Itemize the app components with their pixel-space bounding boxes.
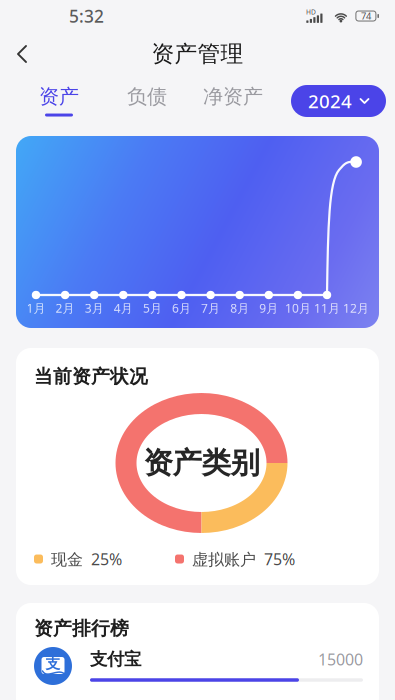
- staticText: 15000: [318, 649, 363, 670]
- button[interactable]: Back: [0, 32, 50, 76]
- staticText: 支: [45, 654, 60, 672]
- staticText: 6月: [172, 300, 191, 316]
- staticText: 资产排行榜: [34, 617, 129, 640]
- staticText: 2024: [308, 89, 352, 113]
- staticText: 5月: [143, 300, 162, 316]
- staticText: HD: [306, 8, 316, 16]
- staticText: 1月: [26, 300, 45, 316]
- button[interactable]: 负债: [123, 85, 171, 116]
- staticText: 12月: [343, 300, 369, 316]
- staticText: 资产管理: [151, 40, 243, 68]
- staticText: 资产: [39, 84, 79, 109]
- staticText: 当前资产状况: [34, 365, 148, 388]
- staticText: 74: [361, 10, 371, 22]
- staticText: 8月: [230, 300, 249, 316]
- staticText: 5:32: [69, 4, 104, 27]
- staticText: 净资产: [203, 84, 263, 109]
- button[interactable]: 2024: [291, 85, 386, 117]
- button[interactable]: 资产: [35, 85, 83, 116]
- staticText: 支付宝: [90, 649, 141, 670]
- staticText: 7月: [201, 300, 220, 316]
- staticText: 4月: [114, 300, 133, 316]
- staticText: 9月: [259, 300, 278, 316]
- staticText: 虚拟账户 75%: [192, 548, 295, 570]
- staticText: 11月: [314, 300, 340, 316]
- button[interactable]: 净资产: [199, 85, 267, 116]
- staticText: 资产类别: [143, 445, 259, 481]
- staticText: 现金 25%: [51, 548, 122, 570]
- staticText: 2月: [56, 300, 75, 316]
- staticText: 10月: [285, 300, 311, 316]
- staticText: 负债: [127, 84, 167, 109]
- staticText: 3月: [85, 300, 104, 316]
- button[interactable]: 支: [34, 645, 363, 687]
